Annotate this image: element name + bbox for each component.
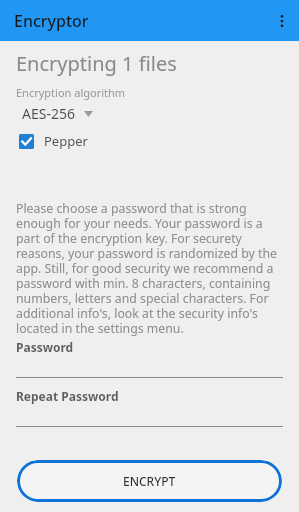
staticText: Encryptor [14, 10, 89, 32]
staticText: Password [16, 339, 74, 355]
staticText: AES-256 [22, 104, 75, 123]
staticText: Pepper [44, 132, 88, 150]
button[interactable]: Pepper [19, 132, 88, 150]
button[interactable]: ENCRYPT [17, 460, 282, 502]
staticText: ENCRYPT [123, 473, 176, 489]
staticText: Please choose a password that is strong … [16, 200, 283, 337]
staticText: Repeat Password [16, 388, 119, 404]
staticText: Encrypting 1 files [16, 50, 177, 77]
button[interactable]: AES-256 [22, 104, 93, 123]
staticText: Encryption algorithm [16, 85, 126, 100]
button[interactable]: More options [265, 0, 299, 41]
